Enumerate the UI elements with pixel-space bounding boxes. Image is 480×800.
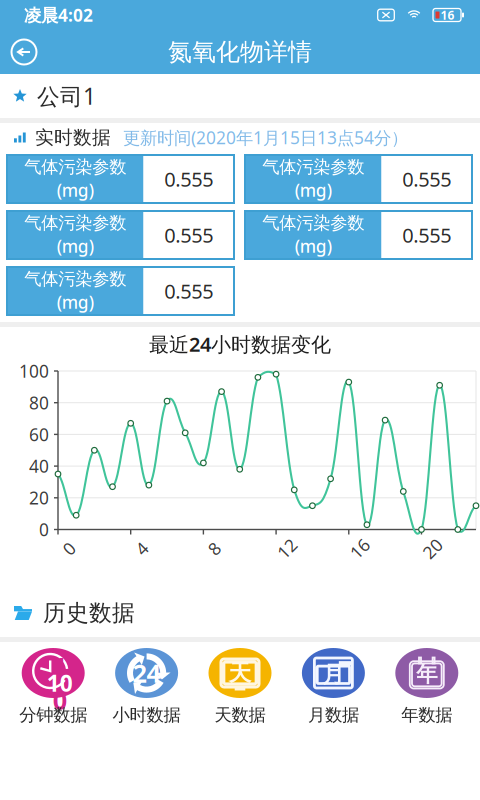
staticText: 20 — [29, 486, 49, 509]
staticText: 气体污染参数 — [24, 212, 126, 234]
button[interactable]: 月 — [287, 646, 380, 728]
button[interactable]: 年 — [380, 646, 473, 728]
staticText: 公司1 — [37, 81, 96, 111]
button[interactable]: 天 — [193, 646, 287, 728]
staticText: 氮氧化物详情 — [168, 37, 312, 67]
staticText: 凌晨4:02 — [24, 3, 93, 26]
staticText: 100 — [19, 359, 49, 382]
button[interactable]: 气体污染参数 — [5, 153, 236, 205]
staticText: 10 — [53, 649, 67, 717]
staticText: 16 — [350, 537, 370, 560]
staticText: (mg) — [57, 291, 94, 314]
staticText: (mg) — [295, 235, 332, 258]
staticText: 10 — [47, 668, 73, 698]
staticText: 天 — [228, 659, 251, 687]
staticText: 0.555 — [164, 278, 213, 304]
button[interactable]: 气体污染参数 — [243, 209, 474, 261]
button[interactable]: 24 — [100, 646, 193, 728]
staticText: 实时数据 — [35, 126, 111, 149]
staticText: 0 — [64, 537, 74, 560]
staticText: 气体污染参数 — [262, 156, 364, 178]
staticText: 16 — [440, 7, 454, 23]
staticText: 最近24小时数据变化 — [149, 331, 331, 357]
staticText: 小时数据 — [113, 704, 181, 726]
staticText: 0.555 — [164, 166, 213, 192]
button[interactable]: 气体污染参数 — [243, 153, 474, 205]
staticText: 0.555 — [164, 222, 213, 248]
staticText: 24 — [133, 656, 161, 690]
staticText: 12 — [277, 537, 297, 560]
staticText: 月数据 — [308, 704, 359, 726]
staticText: 天数据 — [214, 704, 265, 726]
staticText: 40 — [29, 455, 49, 478]
staticText: 更新时间(2020年1月15日13点54分） — [123, 126, 408, 149]
staticText: 年数据 — [401, 704, 452, 726]
staticText: 年 — [416, 661, 437, 688]
staticText: (mg) — [295, 179, 332, 202]
staticText: 0.555 — [402, 222, 451, 248]
staticText: 0.555 — [402, 166, 451, 192]
staticText: (mg) — [57, 179, 94, 202]
button[interactable]: 气体污染参数 — [5, 209, 236, 261]
staticText: 气体污染参数 — [24, 268, 126, 290]
staticText: 气体污染参数 — [262, 212, 364, 234]
staticText: 60 — [29, 423, 49, 446]
staticText: 4 — [137, 537, 147, 560]
staticText: 分钟数据 — [19, 704, 87, 726]
staticText: 8 — [209, 537, 219, 560]
button[interactable]: 气体污染参数 — [5, 265, 236, 317]
button[interactable]: 返回 — [2, 30, 46, 74]
staticText: 气体污染参数 — [24, 156, 126, 178]
staticText: (mg) — [57, 235, 94, 258]
button[interactable]: 10 — [6, 646, 100, 728]
staticText: 月 — [322, 661, 345, 688]
staticText: 80 — [29, 391, 49, 414]
staticText: 0 — [39, 518, 49, 541]
staticText: 20 — [422, 537, 442, 560]
staticText: 历史数据 — [43, 599, 135, 627]
